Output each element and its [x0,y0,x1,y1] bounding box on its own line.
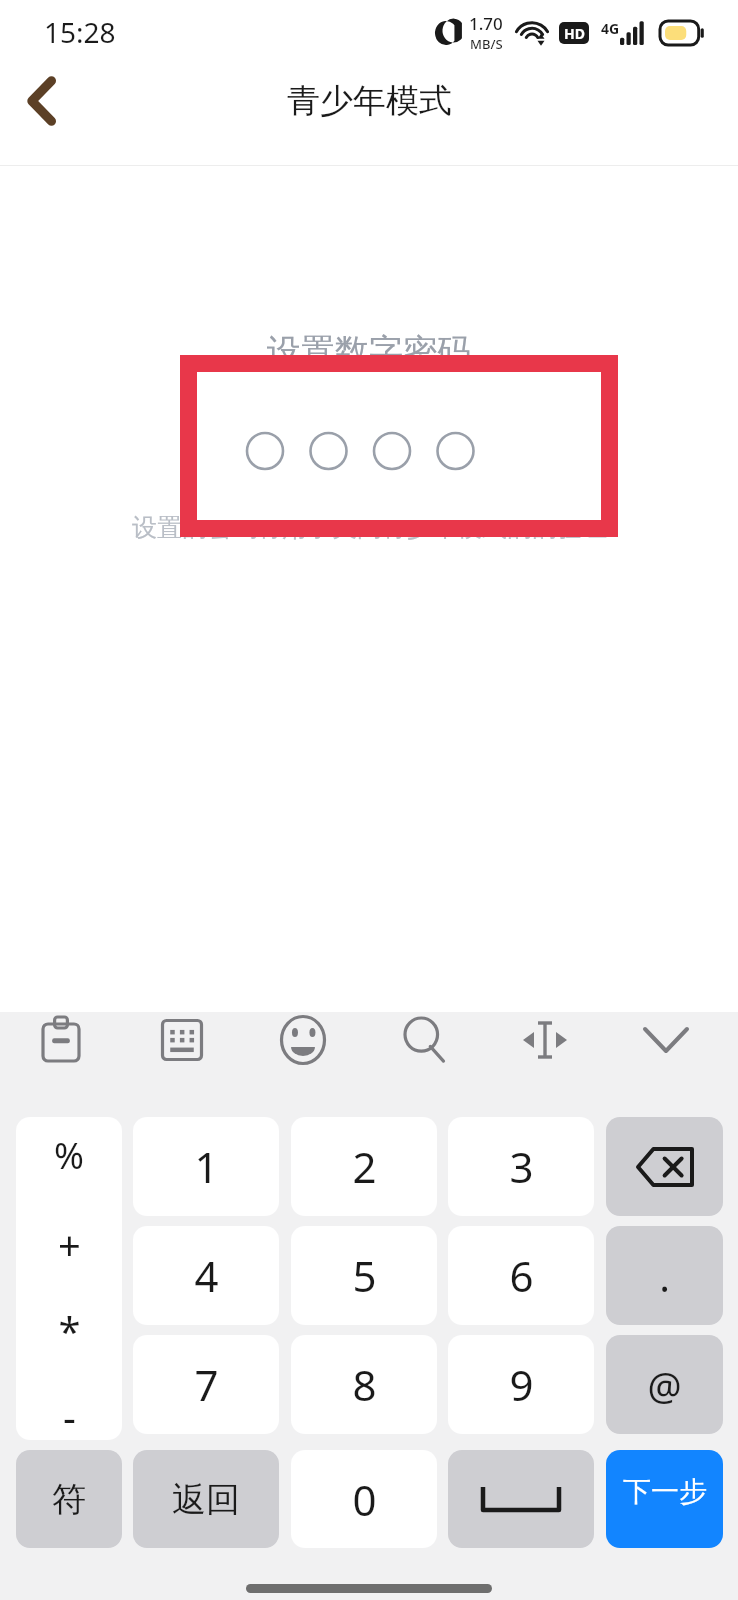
button[interactable]: Back [0,59,84,143]
button[interactable]: Emoji [259,996,347,1084]
staticText: - [63,1389,76,1440]
button[interactable]: Keyboard layout [138,996,226,1084]
staticText: @ [647,1359,682,1411]
button[interactable]: 3 [448,1117,594,1216]
button[interactable]: Backspace [606,1117,723,1216]
staticText: 1.70 [469,12,503,35]
button[interactable]: 返回 [133,1450,279,1548]
staticText: 返回 [172,1478,240,1521]
staticText: 设置的密码将用于关闭青少年模式的的验证 [132,512,607,543]
button[interactable]: 0 [291,1450,437,1548]
staticText: + [58,1217,81,1271]
staticText: 下一步 [623,1474,707,1509]
button[interactable]: 2 [291,1117,437,1216]
staticText: MB/S [470,35,503,53]
staticText: 青少年模式 [287,80,452,122]
staticText: HD [564,24,585,43]
staticText: 2 [352,1138,377,1195]
button[interactable]: 7 [133,1335,279,1434]
staticText: * [58,1303,81,1357]
button[interactable]: 5 [291,1226,437,1325]
staticText: 1 [194,1138,219,1195]
button[interactable]: % [16,1117,122,1440]
button[interactable]: 9 [448,1335,594,1434]
staticText: 0 [352,1471,377,1528]
staticText: 6 [509,1247,534,1304]
staticText: 5 [352,1247,377,1304]
staticText: . [659,1249,670,1303]
button[interactable]: Space [448,1450,594,1548]
button[interactable]: 1 [133,1117,279,1216]
button[interactable]: 下一步 [606,1450,723,1548]
button[interactable]: 8 [291,1335,437,1434]
button[interactable]: Hide keyboard [622,996,710,1084]
staticText: 15:28 [44,13,116,51]
button[interactable]: Clipboard [17,996,105,1084]
button[interactable]: 4 [133,1226,279,1325]
staticText: 符 [52,1478,86,1521]
button[interactable]: Search [381,996,469,1084]
staticText: 4 [194,1247,219,1304]
button[interactable]: @ [606,1335,723,1434]
staticText: 7 [194,1356,219,1413]
button[interactable]: Cursor move [501,996,589,1084]
staticText: % [54,1131,84,1180]
staticText: 3 [509,1138,534,1195]
button[interactable]: 6 [448,1226,594,1325]
button[interactable]: . [606,1226,723,1325]
staticText: 8 [352,1356,377,1413]
staticText: 9 [509,1356,534,1413]
button[interactable]: 符 [16,1450,122,1548]
staticText: 设置数字密码 [267,330,471,373]
staticText: 4G [601,19,620,38]
